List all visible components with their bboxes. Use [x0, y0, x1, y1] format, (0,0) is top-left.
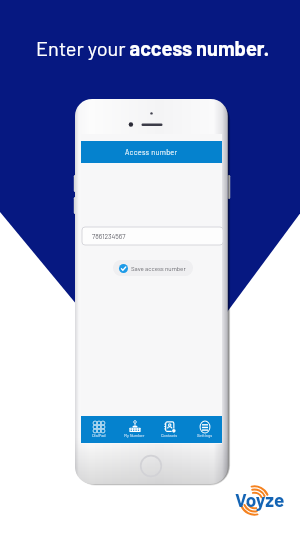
staticText: Save access number	[131, 265, 186, 272]
staticText: Settings	[197, 433, 213, 438]
staticText: Voyze	[235, 488, 285, 511]
staticText: Access number	[125, 148, 178, 157]
button[interactable]: Save access number	[113, 260, 193, 276]
button[interactable]: My number	[117, 416, 152, 443]
staticText: DialPad	[92, 433, 106, 438]
button[interactable]: 7861234567	[82, 227, 223, 245]
button[interactable]: Contacts	[152, 416, 187, 443]
button[interactable]: Access number	[81, 141, 222, 163]
staticText: My Number	[124, 433, 145, 438]
button[interactable]: Settings	[187, 416, 222, 443]
staticText: 7861234567	[92, 232, 126, 240]
staticText: Enter your access number.	[36, 36, 270, 60]
button[interactable]: Dial pad	[81, 416, 117, 443]
staticText: Contacts	[161, 433, 178, 438]
